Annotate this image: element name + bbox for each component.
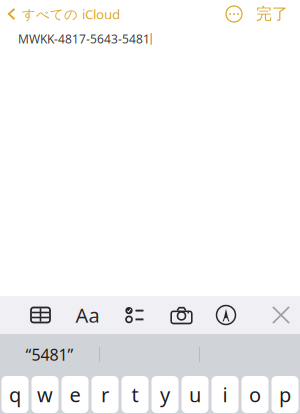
button[interactable]: o: [241, 376, 268, 413]
button[interactable]: u: [181, 376, 208, 413]
button[interactable]: q: [1, 376, 28, 413]
staticText: w: [37, 381, 53, 408]
staticText: “5481”: [25, 344, 73, 365]
button[interactable]: 完了: [252, 2, 292, 26]
staticText: MWKK-4817-5643-5481: [18, 31, 150, 47]
staticText: p: [279, 381, 291, 408]
button[interactable]: y: [151, 376, 178, 413]
staticText: o: [249, 381, 261, 408]
staticText: r: [101, 381, 109, 408]
button[interactable]: w: [31, 376, 58, 413]
button[interactable]: Hide keyboard: [264, 296, 298, 334]
button[interactable]: Markup: [205, 296, 247, 334]
button[interactable]: すべての iCloud: [0, 2, 128, 26]
button[interactable]: Checklist: [111, 296, 158, 334]
button[interactable]: Table: [17, 296, 64, 334]
button[interactable]: e: [61, 376, 88, 413]
staticText: 完了: [256, 4, 288, 24]
button[interactable]: Camera: [158, 296, 205, 334]
staticText: Aa: [75, 302, 99, 328]
staticText: q: [9, 381, 21, 408]
staticText: u: [189, 381, 201, 408]
staticText: e: [69, 381, 80, 408]
button[interactable]: “5481”: [0, 334, 99, 375]
button[interactable]: More: [222, 2, 246, 26]
staticText: y: [160, 381, 170, 408]
staticText: すべての iCloud: [22, 5, 120, 23]
button[interactable]: i: [211, 376, 238, 413]
button[interactable]: t: [121, 376, 148, 413]
staticText: i: [222, 381, 227, 408]
button[interactable]: p: [271, 376, 298, 413]
button[interactable]: r: [91, 376, 118, 413]
button[interactable]: Aa: [64, 296, 111, 334]
staticText: t: [131, 381, 138, 408]
